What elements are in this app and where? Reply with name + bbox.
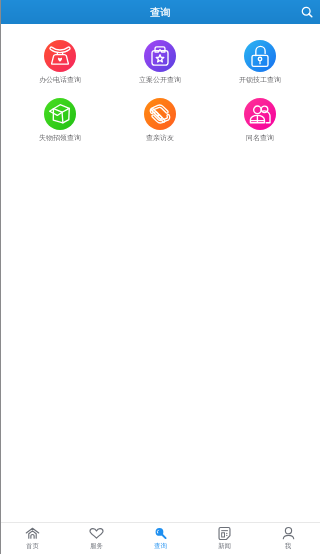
staticText: 首页 xyxy=(26,542,39,550)
button[interactable]: 办公电话查询 xyxy=(10,40,110,84)
staticText: 查询 xyxy=(150,6,171,19)
staticText: 开锁技工查询 xyxy=(239,75,281,84)
staticText: 新闻 xyxy=(218,542,231,550)
staticText: 立案公开查询 xyxy=(139,75,181,84)
staticText: 服务 xyxy=(90,542,103,550)
staticText: 办公电话查询 xyxy=(39,75,81,84)
button[interactable]: 服务 xyxy=(64,523,128,554)
staticText: 失物招领查询 xyxy=(39,133,81,142)
staticText: 我 xyxy=(285,542,292,550)
button[interactable]: 失物招领查询 xyxy=(10,98,110,142)
button[interactable]: 查询 xyxy=(128,523,192,554)
button[interactable]: 开锁技工查询 xyxy=(210,40,310,84)
staticText: 查询 xyxy=(154,542,167,550)
button[interactable]: 首页 xyxy=(0,523,64,554)
button[interactable]: 查亲访友 xyxy=(110,98,210,142)
button[interactable]: 新闻 xyxy=(192,523,256,554)
button[interactable]: 同名查询 xyxy=(210,98,310,142)
button[interactable]: 立案公开查询 xyxy=(110,40,210,84)
staticText: 同名查询 xyxy=(246,133,274,142)
button[interactable]: 我 xyxy=(256,523,320,554)
button[interactable]: Search xyxy=(297,2,317,22)
staticText: 查亲访友 xyxy=(146,133,174,142)
